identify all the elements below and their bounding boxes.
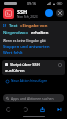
staticText: Wert fehlt — [3, 50, 23, 55]
staticText: SSH — [17, 8, 28, 15]
button[interactable]: Redo — [22, 106, 28, 112]
staticText: erhalten — [31, 30, 49, 36]
button[interactable]: Close — [56, 9, 64, 17]
staticText: Stoppen und antworten — [3, 44, 50, 49]
staticText: ausführen — [5, 68, 25, 73]
staticText: Nirgendwo« — [3, 30, 29, 36]
button[interactable]: Undo — [5, 106, 11, 112]
button[interactable]: Run shortcut — [56, 106, 62, 112]
staticText: Text — [9, 23, 18, 29]
staticText: Wenn es keine Eingabe gibt — [3, 38, 46, 42]
staticText: Neue Aktion hinzufügen — [11, 79, 48, 83]
button[interactable]: SSH app icon — [3, 8, 14, 19]
staticText: Apps und Aktionen suchen — [11, 96, 54, 101]
staticText: Nov 5th, 2023 — [17, 15, 38, 19]
button[interactable]: Skript über SSH — [2, 60, 65, 75]
staticText: Skript über SSH — [10, 62, 40, 67]
staticText: »Eingabe von — [20, 23, 48, 29]
button[interactable]: Run — [45, 9, 53, 17]
staticText: 09:16 — [27, 1, 36, 6]
button[interactable]: Share — [39, 106, 45, 112]
button[interactable]: Apps und Aktionen suchen — [3, 94, 64, 102]
button[interactable]: Info — [58, 63, 62, 67]
button[interactable]: Neue Aktion hinzufügen — [0, 77, 67, 85]
button[interactable]: If — [0, 21, 67, 57]
staticText: If — [3, 23, 7, 29]
